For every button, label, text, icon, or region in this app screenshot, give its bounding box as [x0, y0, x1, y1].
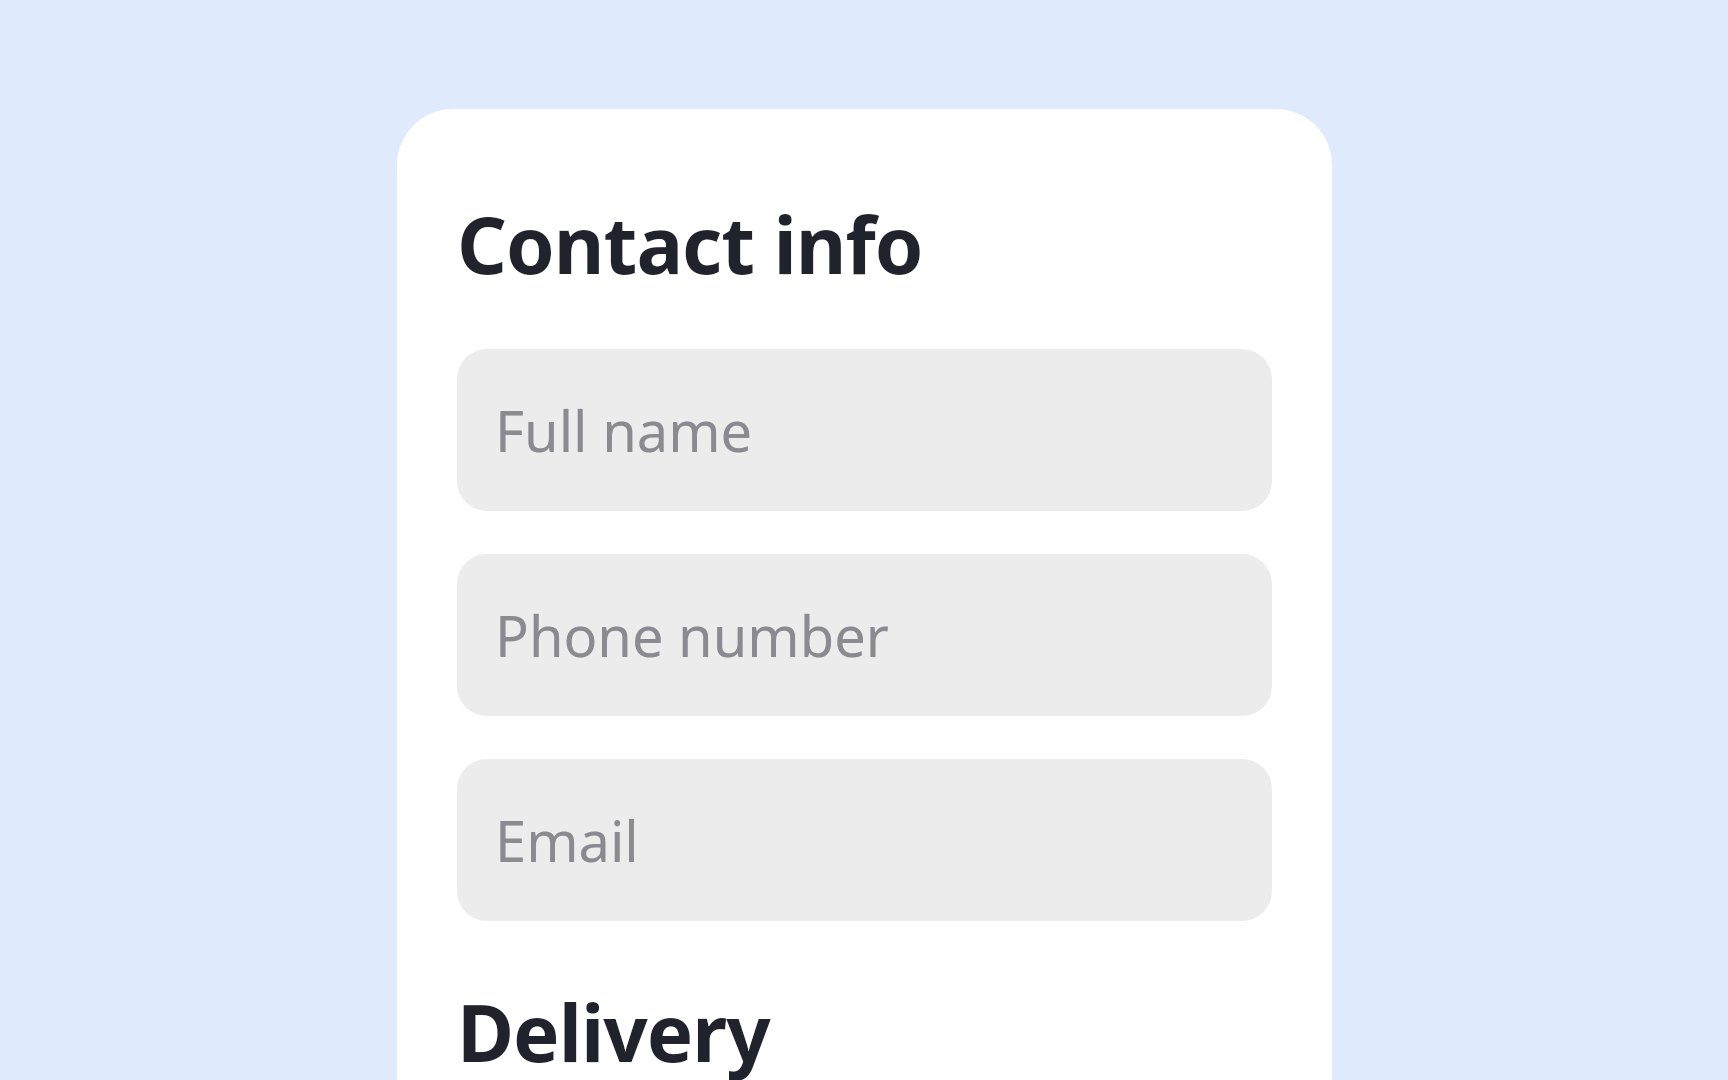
button[interactable]: Full name — [457, 349, 1272, 511]
button[interactable]: Email — [457, 759, 1272, 921]
staticText: Email — [495, 802, 639, 878]
staticText: Phone number — [495, 597, 889, 673]
staticText: Contact info — [457, 191, 923, 297]
staticText: Delivery — [457, 979, 770, 1080]
button[interactable]: Phone number — [457, 554, 1272, 716]
staticText: Full name — [495, 392, 753, 468]
